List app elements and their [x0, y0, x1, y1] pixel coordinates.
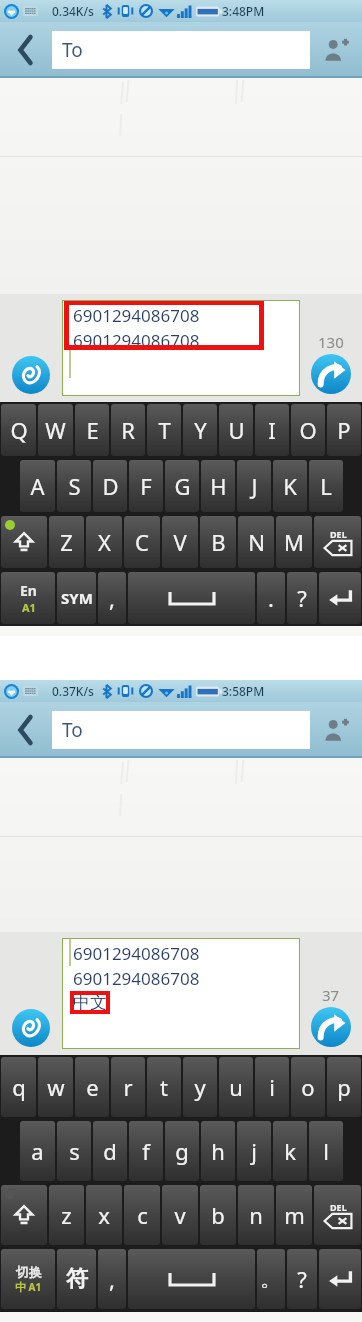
button[interactable]: e	[75, 1057, 109, 1117]
button[interactable]: ?	[287, 572, 317, 624]
button[interactable]: Symbols	[57, 572, 96, 624]
button[interactable]: To	[52, 31, 310, 69]
button[interactable]: V	[162, 516, 198, 568]
button[interactable]: 。	[257, 1249, 285, 1309]
button[interactable]: w	[38, 1057, 73, 1117]
button[interactable]: f	[129, 1121, 163, 1181]
button[interactable]: c	[124, 1185, 160, 1245]
button[interactable]: I	[255, 404, 289, 456]
staticText: h	[211, 1136, 225, 1166]
button[interactable]: Shift	[1, 1185, 47, 1245]
button[interactable]: Back	[0, 22, 52, 78]
button[interactable]: j	[237, 1121, 271, 1181]
staticText: DEL	[330, 528, 347, 540]
button[interactable]: Y	[183, 404, 217, 456]
button[interactable]: i	[255, 1057, 289, 1117]
button[interactable]: C	[124, 516, 160, 568]
button[interactable]: n	[238, 1185, 274, 1245]
button[interactable]: Symbols	[57, 1249, 96, 1309]
button[interactable]: g	[165, 1121, 199, 1181]
button[interactable]: t	[147, 1057, 181, 1117]
staticText: A	[30, 471, 45, 501]
button[interactable]: r	[111, 1057, 145, 1117]
staticText: D	[102, 471, 119, 501]
button[interactable]: Add contact	[310, 22, 362, 78]
button[interactable]: p	[327, 1057, 361, 1117]
staticText: t	[160, 1072, 168, 1102]
button[interactable]: .	[257, 572, 285, 624]
staticText: e	[86, 1072, 99, 1102]
button[interactable]: T	[147, 404, 181, 456]
button[interactable]: D	[93, 460, 127, 512]
button[interactable]: u	[219, 1057, 253, 1117]
button[interactable]: y	[183, 1057, 217, 1117]
button[interactable]: ?	[287, 1249, 317, 1309]
button[interactable]: U	[219, 404, 253, 456]
staticText: 。	[260, 1265, 282, 1293]
button[interactable]: d	[93, 1121, 127, 1181]
staticText: SYM	[61, 588, 93, 608]
button[interactable]: X	[86, 516, 122, 568]
button[interactable]: N	[238, 516, 274, 568]
button[interactable]: ,	[98, 1249, 126, 1309]
button[interactable]: L	[309, 460, 343, 512]
button[interactable]: a	[20, 1121, 55, 1181]
button[interactable]: Attach	[0, 294, 62, 402]
staticText: Q	[10, 415, 28, 445]
button[interactable]: Delete	[314, 516, 361, 568]
button[interactable]: Language	[1, 1249, 55, 1309]
button[interactable]: B	[200, 516, 236, 568]
button[interactable]: q	[1, 1057, 36, 1117]
button[interactable]: Send	[311, 354, 351, 394]
button[interactable]: h	[201, 1121, 235, 1181]
button[interactable]: J	[237, 460, 271, 512]
button[interactable]: Back	[0, 702, 52, 758]
staticText: P	[337, 415, 351, 445]
button[interactable]: Send	[311, 1007, 351, 1047]
button[interactable]: E	[75, 404, 109, 456]
button[interactable]: z	[49, 1185, 84, 1245]
button[interactable]: v	[162, 1185, 198, 1245]
button[interactable]: Enter	[319, 572, 361, 624]
staticText: k	[284, 1136, 296, 1166]
button[interactable]: To	[52, 711, 310, 749]
button[interactable]: W	[38, 404, 73, 456]
button[interactable]: x	[86, 1185, 122, 1245]
button[interactable]: R	[111, 404, 145, 456]
button[interactable]: b	[200, 1185, 236, 1245]
button[interactable]: Add contact	[310, 702, 362, 758]
button[interactable]: P	[327, 404, 361, 456]
button[interactable]: Space	[128, 572, 255, 624]
staticText: .	[268, 583, 274, 613]
button[interactable]: s	[57, 1121, 91, 1181]
button[interactable]: ,	[98, 572, 126, 624]
button[interactable]: Attach	[0, 932, 62, 1055]
button[interactable]: Language	[1, 572, 55, 624]
staticText: 6901294086708	[73, 304, 200, 327]
button[interactable]: Enter	[319, 1249, 361, 1309]
staticText: X	[98, 527, 111, 557]
button[interactable]: Z	[49, 516, 84, 568]
staticText: 0.37K/s	[52, 683, 94, 699]
staticText: 3:58PM	[222, 683, 265, 699]
button[interactable]: S	[57, 460, 91, 512]
button[interactable]: 6901294086708	[62, 938, 300, 1049]
staticText: F	[140, 471, 152, 501]
button[interactable]: o	[291, 1057, 325, 1117]
button[interactable]: H	[201, 460, 235, 512]
button[interactable]: m	[276, 1185, 312, 1245]
button[interactable]: K	[273, 460, 307, 512]
button[interactable]: Q	[1, 404, 36, 456]
button[interactable]: M	[276, 516, 312, 568]
button[interactable]: 6901294086708	[62, 300, 300, 396]
button[interactable]: Delete	[314, 1185, 361, 1245]
staticText: L	[320, 471, 332, 501]
button[interactable]: G	[165, 460, 199, 512]
button[interactable]: k	[273, 1121, 307, 1181]
button[interactable]: Shift	[1, 516, 47, 568]
button[interactable]: Space	[128, 1249, 255, 1309]
button[interactable]: l	[309, 1121, 343, 1181]
button[interactable]: O	[291, 404, 325, 456]
button[interactable]: F	[129, 460, 163, 512]
button[interactable]: A	[20, 460, 55, 512]
